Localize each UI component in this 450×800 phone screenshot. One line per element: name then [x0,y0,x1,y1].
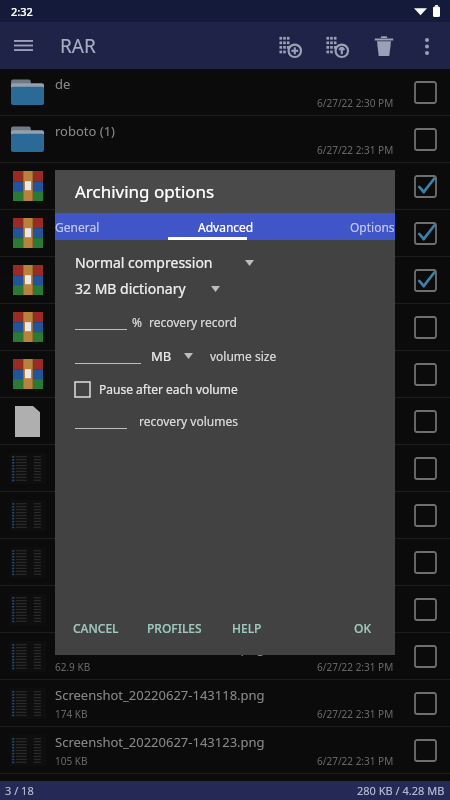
staticText: 2:32 [11,4,33,19]
button[interactable]: Select item [0,492,450,538]
button[interactable]: roboto (1) [0,116,450,162]
staticText: PROFILES [147,620,202,636]
staticText: de [55,75,71,93]
button[interactable]: CANCEL [67,615,125,641]
button[interactable]: Select item [0,539,450,585]
button[interactable]: Select item [400,351,450,397]
button[interactable]: PROFILES [141,615,208,641]
button[interactable]: OK [348,615,377,641]
staticText: RAR [60,33,96,59]
button[interactable]: Extract archive [313,22,360,69]
staticText: CANCEL [73,620,119,636]
staticText: HELP [232,620,262,636]
button[interactable]: Options [282,213,395,240]
staticText: 62.9 KB [55,660,91,674]
staticText: 280 KB / 4.28 MB [357,783,445,798]
staticText: 32 MB dictionary [75,279,186,298]
staticText: 6/27/22 2:30 PM [317,96,394,110]
button[interactable]: Select item [400,398,450,444]
staticText: Advanced [198,219,254,235]
staticText: recovery record [149,314,237,330]
staticText: MB [151,347,172,365]
button[interactable]: Select item [0,586,450,632]
button[interactable]: More options [407,26,447,66]
button[interactable]: General [55,213,169,240]
button[interactable]: Select item [400,116,450,162]
staticText: volume size [210,348,277,364]
button[interactable]: Select item [0,304,450,350]
button[interactable]: Select item [400,304,450,350]
button[interactable]: Screenshot_20220627-143104.png [0,633,450,679]
button[interactable]: Select item [400,586,450,632]
staticText: Screenshot_20220627-143104.png [55,639,265,657]
button[interactable]: 32 MB dictionary [75,279,220,298]
button[interactable]: Select item [400,163,450,209]
button[interactable]: Select item [0,351,450,397]
button[interactable]: Select item [400,257,450,303]
button[interactable]: Select item [400,69,450,115]
button[interactable]: Select item [0,210,450,256]
staticText: 6/27/22 2:31 PM [317,754,394,768]
button[interactable]: Add to archive [266,22,313,69]
staticText: 6/27/22 2:31 PM [317,143,394,157]
button[interactable]: Select item [0,398,450,444]
staticText: General [55,219,100,235]
staticText: Pause after each volume [99,381,238,397]
button[interactable]: Select item [400,680,450,726]
button[interactable]: Text field [75,314,127,330]
button[interactable]: Screenshot_20220627-143123.png [0,727,450,773]
button[interactable]: Select item [400,539,450,585]
button[interactable]: Select item [400,445,450,491]
staticText: OK [354,620,371,636]
button[interactable]: de [0,69,450,115]
button[interactable]: Normal compression [75,253,254,272]
button[interactable]: Open navigation menu [0,22,47,69]
button[interactable]: Select item [400,210,450,256]
staticText: 174 KB [55,707,88,721]
staticText: Archiving options [75,180,215,203]
staticText: recovery volumes [139,413,238,429]
button[interactable]: Select item [0,163,450,209]
staticText: Options [350,219,395,235]
staticText: % [132,314,142,330]
staticText: 6/27/22 2:31 PM [317,707,394,721]
button[interactable]: HELP [226,615,268,641]
button[interactable]: Text field [75,348,141,364]
staticText: Screenshot_20220627-143118.png [55,686,265,704]
button[interactable]: Select item [0,445,450,491]
staticText: 105 KB [55,754,88,768]
button[interactable]: Select item [400,633,450,679]
button[interactable]: Delete [360,22,407,69]
staticText: Normal compression [75,253,213,272]
button[interactable]: Select item [0,257,450,303]
staticText: roboto (1) [55,122,116,140]
staticText: 3 / 18 [5,783,34,798]
button[interactable]: Advanced [169,213,282,240]
button[interactable]: Screenshot_20220627-143118.png [0,680,450,726]
button[interactable]: Pause after each volume [75,381,238,397]
button[interactable]: Text field [75,413,127,429]
staticText: Screenshot_20220627-143123.png [55,733,265,751]
button[interactable]: Select item [400,727,450,773]
button[interactable]: Select item [400,492,450,538]
staticText: 6/27/22 2:31 PM [317,660,394,674]
